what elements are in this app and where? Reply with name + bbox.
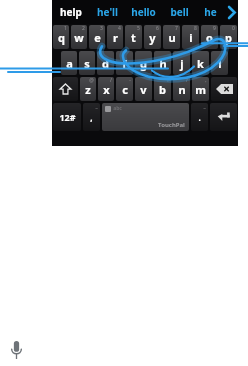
button[interactable]: 8 xyxy=(182,25,199,49)
staticText: q xyxy=(58,30,65,45)
button[interactable]: ? xyxy=(173,77,190,101)
button[interactable]: h xyxy=(154,51,171,75)
button[interactable]: 4 xyxy=(107,25,123,49)
staticText: . xyxy=(198,112,201,123)
staticText: 5 xyxy=(137,25,140,32)
button[interactable]: s xyxy=(79,51,95,75)
staticText: - xyxy=(129,77,131,84)
staticText: g xyxy=(140,56,147,71)
staticText: 12# xyxy=(59,111,76,123)
staticText: c xyxy=(122,82,128,97)
button[interactable]: 7 xyxy=(163,25,180,49)
staticText: 0 xyxy=(232,25,235,32)
staticText: 9 xyxy=(213,25,216,32)
staticText: _ xyxy=(95,103,98,110)
staticText: ' xyxy=(148,77,150,84)
staticText: 2 xyxy=(82,25,85,32)
button[interactable]: 1 xyxy=(53,25,69,49)
staticText: h xyxy=(159,56,167,71)
staticText: , xyxy=(90,112,93,123)
staticText: hello xyxy=(131,5,156,19)
staticText: r xyxy=(113,30,118,45)
button[interactable]: hello xyxy=(125,0,161,24)
staticText: TouchPal xyxy=(158,121,185,129)
staticText: , xyxy=(205,77,207,84)
button[interactable]: Space xyxy=(102,103,189,131)
button[interactable]: Backspace xyxy=(211,77,237,101)
staticText: / xyxy=(110,77,112,84)
button[interactable]: _ xyxy=(83,103,100,131)
staticText: abc xyxy=(113,105,122,112)
staticText: ? xyxy=(185,77,188,84)
button[interactable]: Voice input xyxy=(6,338,26,362)
button[interactable]: , xyxy=(192,77,209,101)
button[interactable]: 0 xyxy=(220,25,237,49)
button[interactable]: d xyxy=(97,51,114,75)
button[interactable]: _ xyxy=(191,103,208,131)
button[interactable]: 3 xyxy=(89,25,105,49)
staticText: 1 xyxy=(64,25,67,32)
staticText: f xyxy=(122,56,127,71)
staticText: y xyxy=(149,30,156,45)
staticText: n xyxy=(178,82,186,97)
staticText: t xyxy=(131,30,136,45)
staticText: b xyxy=(159,82,166,97)
staticText: 8 xyxy=(194,25,197,32)
button[interactable]: g xyxy=(135,51,152,75)
button[interactable]: 9 xyxy=(201,25,218,49)
staticText: help xyxy=(60,5,82,19)
staticText: i xyxy=(189,30,193,45)
staticText: 4 xyxy=(118,25,121,32)
staticText: d xyxy=(102,56,109,71)
button[interactable]: help xyxy=(52,0,89,24)
button[interactable]: @ xyxy=(80,77,96,101)
button[interactable]: bell xyxy=(161,0,197,24)
button[interactable]: he xyxy=(197,0,224,24)
staticText: v xyxy=(140,82,147,97)
staticText: p xyxy=(225,30,232,45)
button[interactable]: 2 xyxy=(71,25,87,49)
button[interactable]: ' xyxy=(135,77,152,101)
button[interactable]: 6 xyxy=(144,25,161,49)
staticText: 3 xyxy=(100,25,103,32)
staticText: _ xyxy=(203,103,206,110)
staticText: k xyxy=(197,56,204,71)
button[interactable]: - xyxy=(116,77,133,101)
button[interactable]: k xyxy=(192,51,209,75)
button[interactable]: / xyxy=(98,77,114,101)
staticText: he xyxy=(204,5,217,19)
button[interactable]: j xyxy=(173,51,190,75)
staticText: he'll xyxy=(97,5,118,19)
staticText: o xyxy=(206,30,213,45)
staticText: a xyxy=(66,56,73,71)
button[interactable]: 5 xyxy=(125,25,142,49)
button[interactable]: he'll xyxy=(89,0,125,24)
button[interactable]: ! xyxy=(154,77,171,101)
staticText: u xyxy=(168,30,176,45)
button[interactable]: l xyxy=(211,51,228,75)
staticText: @ xyxy=(89,77,94,84)
staticText: j xyxy=(180,56,184,71)
staticText: ! xyxy=(167,77,169,84)
staticText: m xyxy=(195,82,206,97)
staticText: z xyxy=(85,82,91,97)
staticText: l xyxy=(218,56,222,71)
staticText: e xyxy=(94,30,101,45)
staticText: x xyxy=(103,82,110,97)
staticText: 6 xyxy=(156,25,159,32)
button[interactable]: a xyxy=(61,51,77,75)
button[interactable]: Shift xyxy=(53,77,78,101)
button[interactable]: More suggestions xyxy=(224,0,238,24)
staticText: w xyxy=(74,30,84,45)
staticText: 7 xyxy=(175,25,178,32)
staticText: bell xyxy=(170,5,189,19)
button[interactable]: Enter xyxy=(210,103,237,131)
staticText: s xyxy=(84,56,90,71)
button[interactable]: 12# xyxy=(53,103,81,131)
button[interactable]: f xyxy=(116,51,133,75)
